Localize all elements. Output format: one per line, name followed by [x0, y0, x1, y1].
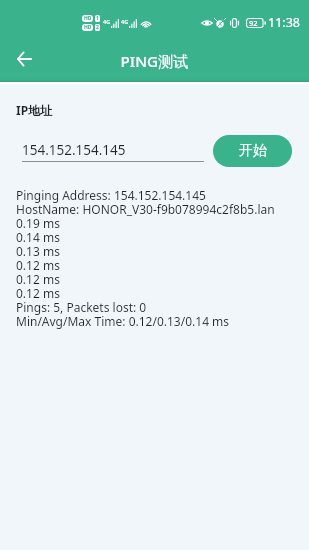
staticText: 4G	[103, 18, 111, 25]
staticText: HD	[84, 24, 92, 31]
staticText: 4G	[121, 18, 129, 25]
staticText: 11:38	[268, 14, 300, 31]
staticText: HD	[84, 15, 92, 22]
button[interactable]: 开始	[213, 135, 292, 167]
staticText: 154.152.154.145	[22, 141, 126, 159]
staticText: 2	[96, 24, 99, 31]
staticText: PING测试	[0, 51, 309, 72]
button[interactable]: Back	[8, 43, 40, 75]
staticText: 1	[96, 15, 99, 22]
staticText: Pinging Address: 154.152.154.145 HostNam…	[16, 189, 275, 329]
staticText: 92	[249, 18, 258, 28]
staticText: 开始	[239, 142, 267, 160]
staticText: IP地址	[16, 102, 53, 118]
